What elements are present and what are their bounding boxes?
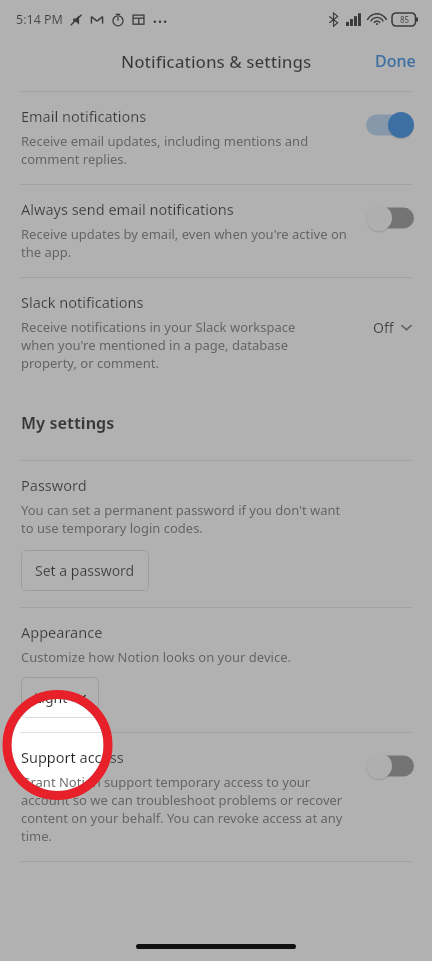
staticText: 5:14 PM <box>16 11 63 28</box>
staticText: Appearance <box>21 622 103 642</box>
staticText: Off <box>373 318 394 337</box>
staticText: Customize how Notion looks on your devic… <box>21 648 291 666</box>
staticText: Support access <box>21 747 124 767</box>
button[interactable]: Slack notifications <box>0 278 432 388</box>
staticText: Receive notifications in your Slack work… <box>21 318 296 372</box>
button[interactable]: Toggle off <box>366 753 414 779</box>
button[interactable]: Email notifications <box>0 92 432 184</box>
button[interactable]: Toggle on <box>366 112 414 138</box>
staticText: You can set a permanent password if you … <box>21 501 341 537</box>
staticText: Grant Notion support temporary access to… <box>21 773 343 845</box>
staticText: Always send email notifications <box>21 199 234 219</box>
staticText: Done <box>375 50 416 72</box>
staticText: Set a password <box>35 561 135 580</box>
button[interactable]: Set a password <box>21 550 149 591</box>
button[interactable]: Support access <box>0 733 432 861</box>
staticText: My settings <box>21 412 115 434</box>
staticText: Light <box>34 688 68 707</box>
button[interactable]: Off <box>373 318 412 337</box>
button[interactable]: Toggle off <box>366 205 414 231</box>
staticText: 85 <box>400 14 410 25</box>
button[interactable]: Light <box>21 677 99 718</box>
staticText: Receive email updates, including mention… <box>21 132 309 168</box>
staticText: Receive updates by email, even when you'… <box>21 225 347 261</box>
button[interactable]: Always send email notifications <box>0 185 432 277</box>
staticText: Slack notifications <box>21 292 144 312</box>
button[interactable]: Done <box>359 40 432 82</box>
staticText: Password <box>21 475 87 495</box>
staticText: Email notifications <box>21 106 147 126</box>
staticText: Notifications & settings <box>121 50 312 73</box>
